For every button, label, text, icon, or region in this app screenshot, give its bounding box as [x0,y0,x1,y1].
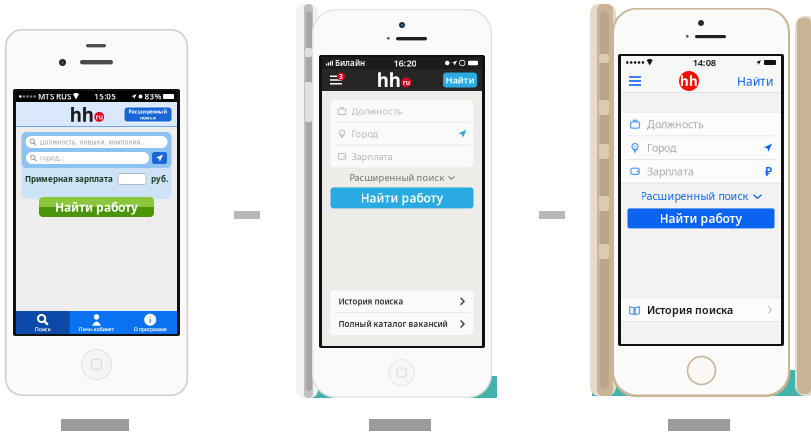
button[interactable]: Личн. кабинет [70,311,123,334]
staticText: Расширенный поиск [349,171,444,184]
staticText: ru [403,78,410,87]
staticText: Найти [445,74,474,86]
staticText: Расширенный [128,108,167,115]
button[interactable]: Найти работу [330,187,473,208]
staticText: Должность [647,117,704,131]
staticText: Зарплата [351,150,392,163]
button[interactable]: Найти [734,70,776,92]
staticText: О программе [134,326,167,333]
button[interactable]: Полный каталог вакансий [330,313,473,335]
staticText: Примерная зарплата [25,174,113,184]
button[interactable]: Найти работу [39,197,154,217]
staticText: Найти работу [55,199,138,215]
button[interactable]: О программе [123,311,177,334]
staticText: ru [96,112,103,121]
staticText: Город... [40,154,65,162]
button[interactable]: Расширенный поиск [330,167,473,187]
button[interactable]: Найти работу [627,208,774,228]
staticText: Билайн [335,58,365,68]
staticText: История поиска [647,303,733,317]
staticText: hh [680,72,698,90]
staticText: 16:20 [393,57,416,69]
staticText: MTS RUS [38,91,71,102]
button[interactable]: Расширенный [124,107,172,122]
staticText: Город [647,141,676,155]
staticText: Должность [351,105,402,117]
staticText: руб. [151,174,168,184]
staticText: ₽ [765,163,772,179]
staticText: Город [351,127,378,140]
button[interactable]: Меню [327,72,345,87]
staticText: поиск [140,114,156,121]
button[interactable]: Расширенный поиск [621,183,781,208]
staticText: Расширенный поиск [640,189,748,203]
staticText: 14:08 [693,56,716,69]
staticText: Зарплата [647,164,694,178]
button[interactable]: История поиска [330,290,473,312]
staticText: Найти работу [360,190,443,206]
staticText: Должность, навыки, компания... [39,138,146,146]
staticText: Полный каталог вакансий [338,319,447,329]
button[interactable]: Определить город [152,152,167,164]
staticText: Найти работу [659,210,742,226]
staticText: Личн. кабинет [78,326,114,333]
staticText: hh [377,68,401,92]
button[interactable]: История поиска [621,298,781,321]
staticText: История поиска [338,296,403,307]
button[interactable]: Поиск [16,311,70,334]
button[interactable]: Найти [443,72,477,87]
staticText: 83% [144,91,161,102]
staticText: Поиск [35,326,51,333]
staticText: hh [70,102,94,127]
staticText: 15:05 [94,91,116,102]
staticText: 3 [339,72,343,81]
button[interactable]: Меню [626,73,644,89]
staticText: Найти [737,73,773,89]
